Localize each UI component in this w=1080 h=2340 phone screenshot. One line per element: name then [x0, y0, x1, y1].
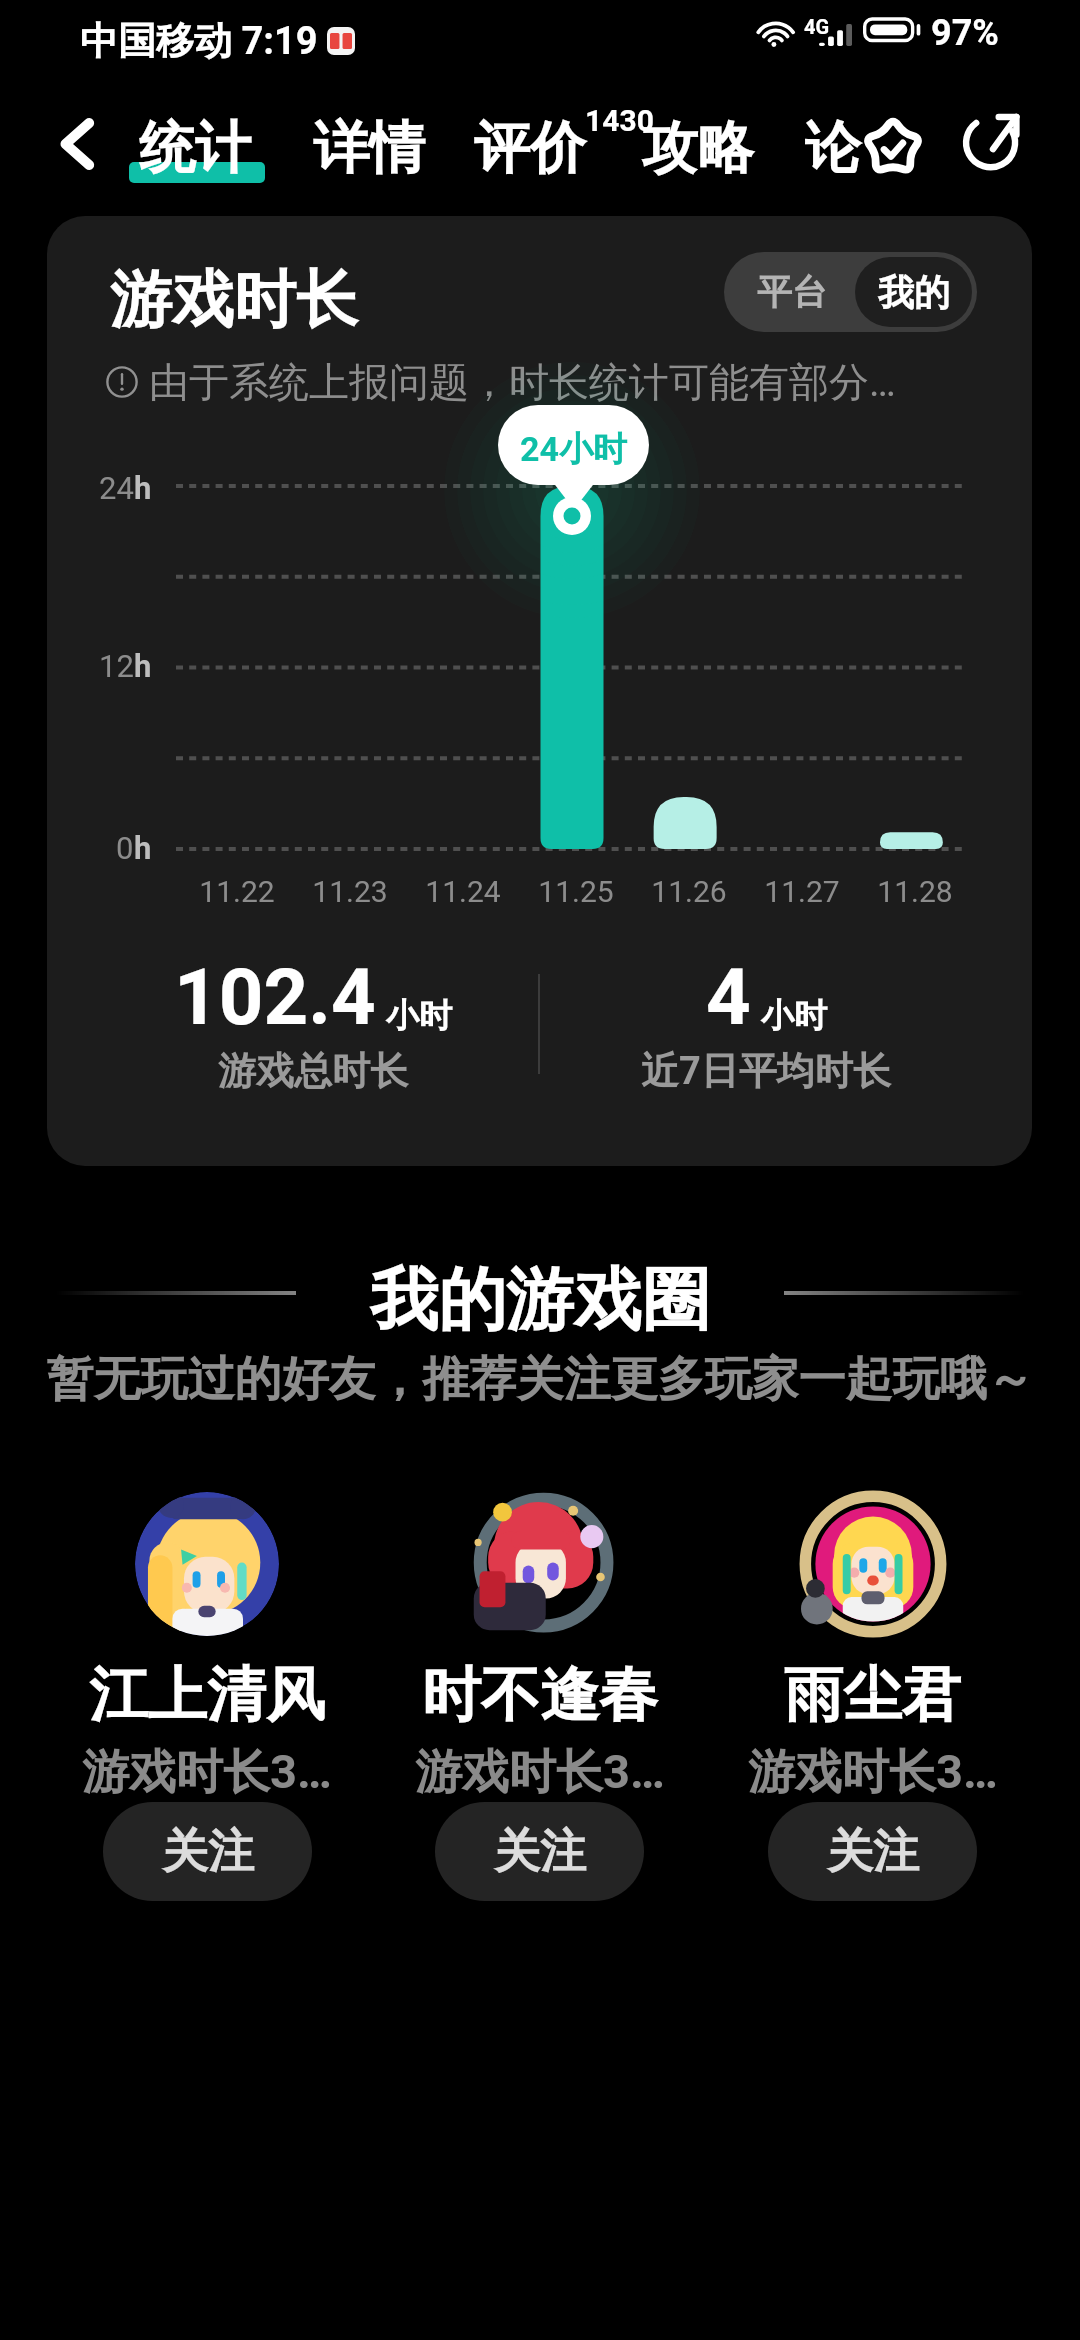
button[interactable]: 论 — [805, 113, 861, 184]
staticText: 江上清风 — [89, 1658, 325, 1732]
staticText: 24 — [99, 470, 134, 506]
button[interactable]: Back — [42, 109, 112, 179]
staticText: 4 — [706, 952, 751, 1043]
staticText: 关注 — [162, 1823, 254, 1881]
staticText: 游戏时长3… — [415, 1743, 665, 1802]
button[interactable]: 详情 — [313, 113, 425, 184]
button[interactable]: Share — [960, 100, 1032, 172]
staticText: 游戏时长3… — [748, 1743, 998, 1802]
button[interactable]: 江上清风 — [41, 1492, 373, 1901]
staticText: 关注 — [827, 1823, 919, 1881]
staticText: 游戏时长3… — [82, 1743, 332, 1802]
button[interactable]: 时不逢春 — [373, 1492, 706, 1901]
staticText: 游戏总时长 — [218, 1047, 408, 1095]
staticText: 1430 — [585, 103, 654, 138]
staticText: 我的 — [878, 270, 950, 315]
staticText: 0 — [116, 830, 134, 866]
staticText: 小时 — [761, 995, 827, 1037]
staticText: 游戏时长 — [110, 261, 358, 339]
staticText: 统计 — [139, 113, 251, 184]
staticText: 11.26 — [633, 874, 745, 909]
staticText: 97% — [931, 12, 999, 54]
button[interactable]: 关注 — [435, 1802, 644, 1901]
staticText: 11.24 — [407, 874, 519, 909]
staticText: 暂无玩过的好友，推荐关注更多玩家一起玩哦～ — [0, 1350, 1080, 1409]
button[interactable]: 统计 — [139, 113, 275, 184]
staticText: h — [134, 648, 152, 684]
button[interactable]: 关注 — [768, 1802, 977, 1901]
staticText: 雨尘君 — [784, 1658, 961, 1732]
button[interactable]: 攻略 — [642, 113, 754, 184]
staticText: 102.4 — [174, 952, 376, 1043]
staticText: 11.27 — [746, 874, 858, 909]
button[interactable]: 雨尘君 — [706, 1492, 1039, 1901]
staticText: 12 — [99, 648, 134, 684]
button[interactable]: Favorite — [857, 109, 929, 181]
staticText: 时不逢春 — [422, 1658, 658, 1732]
staticText: 平台 — [757, 270, 827, 314]
staticText: 4G — [804, 15, 830, 38]
staticText: 11.22 — [181, 874, 293, 909]
button[interactable]: 关注 — [103, 1802, 312, 1901]
staticText: 近7日平均时长 — [641, 1047, 891, 1095]
staticText: 24小时 — [520, 428, 628, 471]
button[interactable]: 评价 — [474, 113, 586, 184]
staticText: 关注 — [494, 1823, 586, 1881]
staticText: 我的游戏圈 — [0, 1258, 1080, 1344]
staticText: 小时 — [386, 995, 452, 1037]
staticText: 11.23 — [294, 874, 406, 909]
button[interactable]: 平台 — [729, 257, 855, 327]
button[interactable]: 我的 — [855, 257, 972, 327]
staticText: h — [134, 830, 152, 866]
staticText: 由于系统上报问题，时长统计可能有部分… — [149, 357, 896, 407]
staticText: 11.28 — [859, 874, 971, 909]
staticText: 11.25 — [520, 874, 632, 909]
staticText: 中国移动 7:19 — [80, 17, 318, 65]
staticText: h — [134, 470, 152, 506]
